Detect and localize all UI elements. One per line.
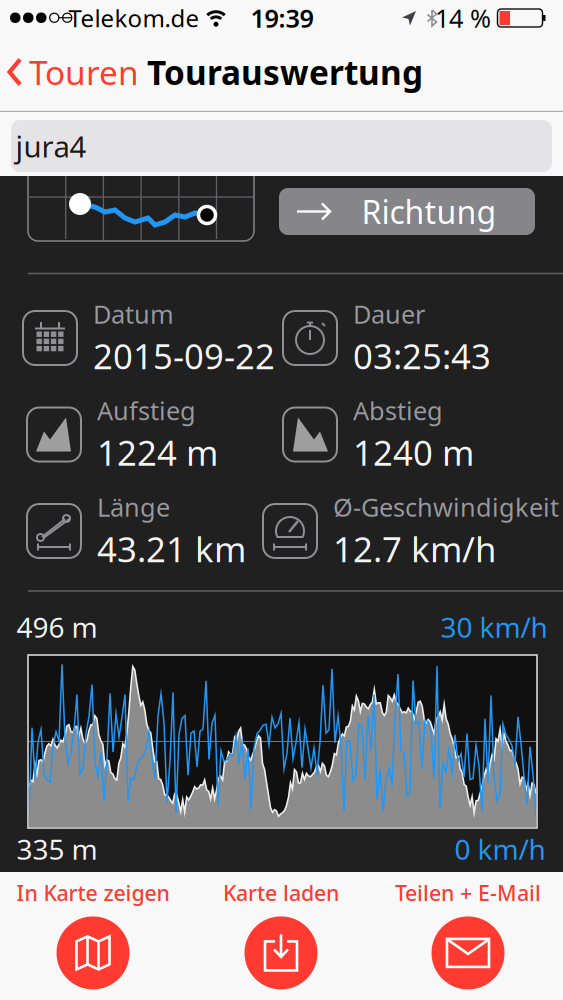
staticText: 30 km/h xyxy=(440,608,547,646)
button[interactable]: Teilen + E-Mail xyxy=(395,879,541,989)
staticText: Länge xyxy=(97,490,170,524)
staticText: Ø-Geschwindigkeit xyxy=(333,490,559,524)
staticText: Telekom.de xyxy=(68,2,199,34)
staticText: 2015-09-22 xyxy=(93,333,275,379)
staticText: 1240 m xyxy=(353,429,474,475)
staticText: Aufstieg xyxy=(97,394,196,427)
button[interactable]: In Karte zeigen xyxy=(16,879,169,989)
staticText: 43.21 km xyxy=(97,526,246,572)
button[interactable]: Tourname xyxy=(11,120,552,172)
staticText: 12.7 km/h xyxy=(333,526,496,572)
staticText: jura4 xyxy=(15,126,86,165)
staticText: Dauer xyxy=(353,297,425,331)
button[interactable]: Touren xyxy=(7,50,139,94)
button[interactable]: Karte laden xyxy=(223,879,339,989)
staticText: 19:39 xyxy=(250,1,313,35)
staticText: 1224 m xyxy=(97,429,218,475)
button[interactable]: Richtung xyxy=(279,188,535,235)
staticText: 03:25:43 xyxy=(353,333,491,379)
staticText: 335 m xyxy=(16,830,97,868)
staticText: Touren xyxy=(29,50,139,94)
staticText: Teilen + E-Mail xyxy=(395,879,541,907)
staticText: Abstieg xyxy=(353,394,443,427)
staticText: In Karte zeigen xyxy=(16,879,169,907)
staticText: 14 % xyxy=(435,1,491,35)
staticText: Richtung xyxy=(361,190,496,233)
staticText: Datum xyxy=(93,297,174,331)
staticText: Tourauswertung xyxy=(147,50,423,94)
staticText: Karte laden xyxy=(223,879,339,907)
staticText: 0 km/h xyxy=(454,830,545,868)
staticText: 496 m xyxy=(16,608,97,646)
